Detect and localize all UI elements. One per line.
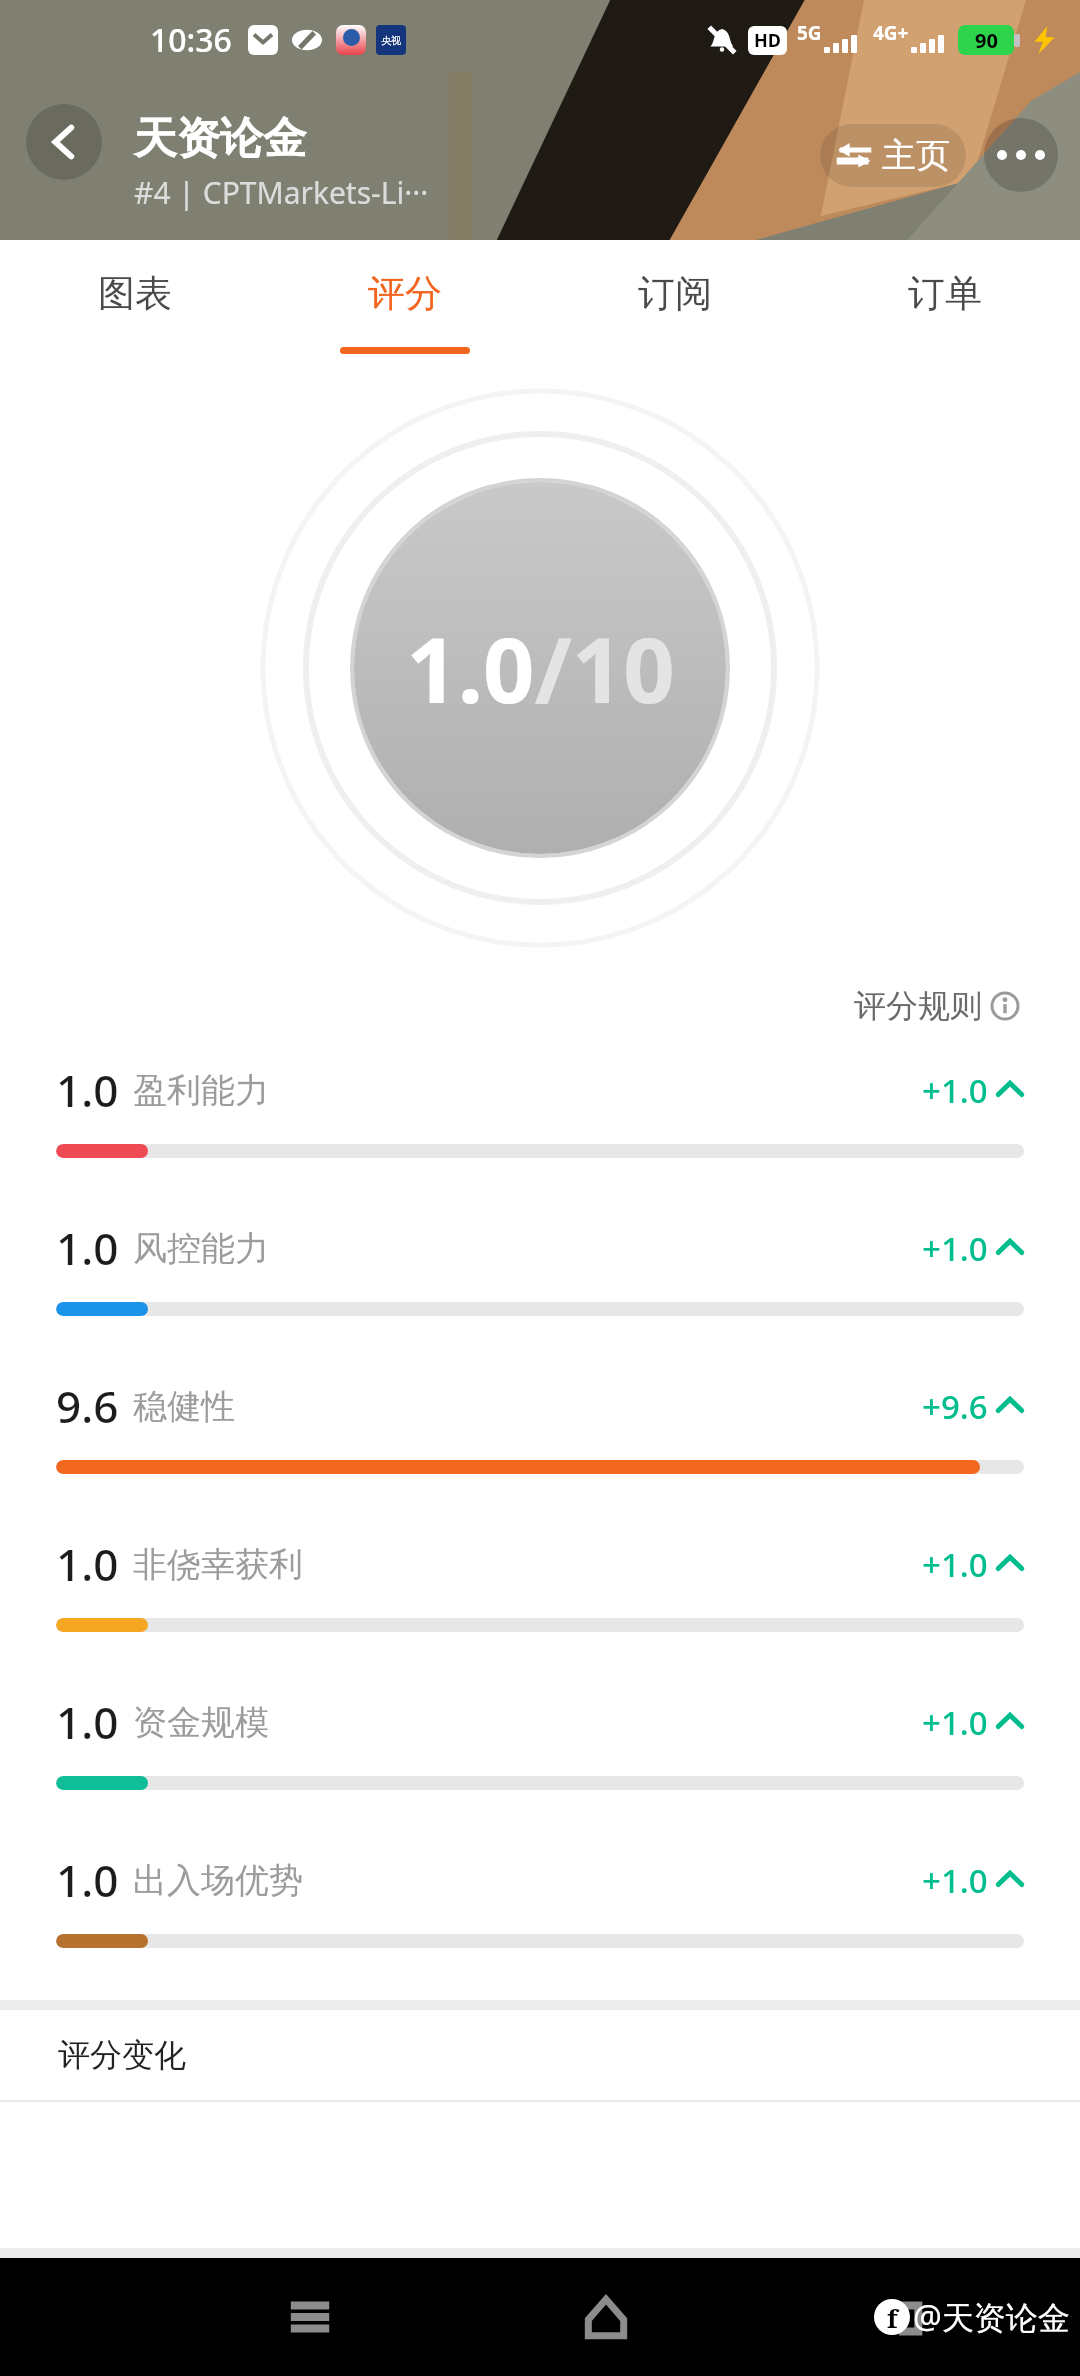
staticText: f bbox=[887, 2300, 898, 2335]
staticText: 出入场优势 bbox=[133, 1859, 303, 1902]
staticText: 1.0 bbox=[56, 1692, 119, 1752]
staticText: 资金规模 bbox=[133, 1701, 269, 1744]
staticText: 1.0 bbox=[56, 1060, 119, 1120]
staticText: +1.0 bbox=[922, 1542, 988, 1587]
button[interactable]: Home bbox=[458, 2258, 754, 2376]
staticText: 非侥幸获利 bbox=[133, 1543, 303, 1586]
staticText: 图表 bbox=[98, 270, 172, 317]
staticText: 主页 bbox=[882, 134, 950, 177]
staticText: +1.0 bbox=[922, 1068, 988, 1113]
button[interactable]: 评分 bbox=[270, 240, 540, 358]
staticText: 1.0/10 bbox=[406, 607, 675, 730]
button[interactable]: 1.0 bbox=[0, 1508, 1080, 1666]
staticText: 订阅 bbox=[638, 270, 712, 317]
staticText: 9.6 bbox=[56, 1376, 119, 1436]
button[interactable]: 1.0 bbox=[0, 1824, 1080, 1982]
staticText: 稳健性 bbox=[133, 1385, 235, 1428]
staticText: 评分变化 bbox=[58, 2035, 186, 2075]
staticText: +1.0 bbox=[922, 1700, 988, 1745]
staticText: 评分 bbox=[368, 270, 442, 317]
staticText: 央视 bbox=[381, 34, 401, 47]
button[interactable]: 9.6 bbox=[0, 1350, 1080, 1508]
staticText: 盈利能力 bbox=[133, 1069, 269, 1112]
button[interactable]: 评分变化 bbox=[0, 2010, 1080, 2100]
staticText: 1.0 bbox=[56, 1850, 119, 1910]
staticText: @天资论金 bbox=[913, 2295, 1070, 2339]
staticText: 评分规则 bbox=[854, 986, 982, 1026]
button[interactable]: 订单 bbox=[810, 240, 1080, 358]
button[interactable]: 1.0 bbox=[0, 1666, 1080, 1824]
button[interactable]: 主页 bbox=[820, 124, 966, 187]
staticText: 4G+ bbox=[873, 20, 909, 46]
button[interactable]: 图表 bbox=[0, 240, 270, 358]
staticText: +1.0 bbox=[922, 1858, 988, 1903]
button[interactable]: 评分规则 bbox=[846, 978, 1028, 1034]
staticText: #4 | CPTMarkets-Li··· bbox=[134, 172, 429, 213]
button[interactable]: 1.0 bbox=[0, 1192, 1080, 1350]
button[interactable]: Back bbox=[754, 2258, 1050, 2376]
staticText: HD bbox=[754, 28, 781, 53]
staticText: 订单 bbox=[908, 270, 982, 317]
button[interactable]: 订阅 bbox=[540, 240, 810, 358]
staticText: 1.0 bbox=[56, 1534, 119, 1594]
staticText: 90 bbox=[975, 27, 998, 54]
button[interactable]: 1.0 bbox=[0, 1034, 1080, 1192]
button[interactable]: More options bbox=[984, 118, 1058, 192]
staticText: 5G bbox=[797, 20, 822, 46]
staticText: 天资论金 bbox=[134, 112, 306, 166]
staticText: 风控能力 bbox=[133, 1227, 269, 1270]
staticText: +1.0 bbox=[922, 1226, 988, 1271]
staticText: +9.6 bbox=[922, 1384, 988, 1429]
staticText: 1.0 bbox=[56, 1218, 119, 1278]
button[interactable]: Back bbox=[26, 104, 102, 180]
staticText: 10:36 bbox=[150, 18, 232, 62]
button[interactable]: Recent apps bbox=[162, 2258, 458, 2376]
